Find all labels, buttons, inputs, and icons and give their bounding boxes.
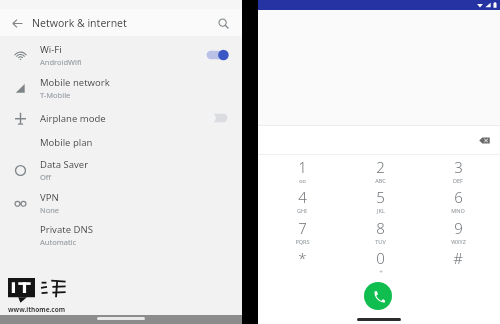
- staticText: TUV: [375, 238, 386, 245]
- staticText: None: [40, 205, 60, 215]
- button[interactable]: Wi-Fi: [0, 40, 242, 70]
- button[interactable]: Call: [364, 282, 392, 310]
- button[interactable]: Airplane mode: [0, 106, 242, 130]
- button[interactable]: Back: [6, 12, 28, 34]
- staticText: oo: [299, 177, 306, 184]
- staticText: #: [453, 248, 463, 268]
- button[interactable]: Airplane mode toggle: [204, 110, 230, 126]
- button[interactable]: Data Saver: [0, 155, 242, 185]
- staticText: 3: [454, 157, 463, 177]
- button[interactable]: 4: [280, 187, 324, 215]
- staticText: 5: [376, 187, 385, 207]
- staticText: ABC: [375, 177, 386, 184]
- button[interactable]: Search: [212, 12, 234, 34]
- staticText: Mobile plan: [40, 136, 93, 149]
- staticText: Automatic: [40, 237, 77, 247]
- staticText: MNO: [451, 207, 465, 214]
- staticText: 7: [298, 218, 307, 238]
- staticText: +: [379, 268, 383, 275]
- staticText: T-Mobile: [40, 90, 71, 100]
- staticText: 8: [376, 218, 385, 238]
- button[interactable]: #: [436, 248, 480, 276]
- staticText: Airplane mode: [40, 112, 106, 125]
- button[interactable]: Wi-Fi toggle: [204, 47, 230, 63]
- staticText: VPN: [40, 191, 59, 204]
- staticText: AndroidWifi: [40, 57, 82, 67]
- staticText: GHI: [297, 207, 307, 214]
- staticText: 9: [454, 218, 463, 238]
- button[interactable]: 2: [358, 157, 402, 185]
- button[interactable]: *: [280, 248, 324, 276]
- staticText: Network & internet: [32, 16, 127, 30]
- staticText: Data Saver: [40, 158, 89, 171]
- staticText: JKL: [377, 207, 385, 214]
- button[interactable]: 1: [280, 157, 324, 185]
- staticText: 6: [454, 187, 463, 207]
- staticText: PQRS: [295, 238, 310, 245]
- button[interactable]: Mobile plan: [0, 130, 242, 154]
- button[interactable]: VPN: [0, 188, 242, 218]
- staticText: 2: [376, 157, 385, 177]
- staticText: Wi-Fi: [40, 43, 62, 56]
- button[interactable]: 9: [436, 218, 480, 246]
- staticText: Private DNS: [40, 223, 93, 236]
- staticText: DEF: [453, 177, 463, 184]
- staticText: Mobile network: [40, 76, 110, 89]
- staticText: www.ithome.com: [8, 305, 66, 314]
- button[interactable]: 8: [358, 218, 402, 246]
- button[interactable]: Private DNS: [0, 220, 242, 250]
- button[interactable]: 7: [280, 218, 324, 246]
- staticText: *: [298, 248, 307, 268]
- staticText: 1: [298, 157, 307, 177]
- button[interactable]: 6: [436, 187, 480, 215]
- button[interactable]: 0: [358, 248, 402, 276]
- staticText: 0: [376, 248, 385, 268]
- button[interactable]: 3: [436, 157, 480, 185]
- staticText: 4: [298, 187, 307, 207]
- button[interactable]: 5: [358, 187, 402, 215]
- staticText: Off: [40, 172, 52, 182]
- button[interactable]: Mobile network: [0, 73, 242, 103]
- staticText: WXYZ: [451, 238, 466, 245]
- button[interactable]: Backspace: [476, 132, 492, 148]
